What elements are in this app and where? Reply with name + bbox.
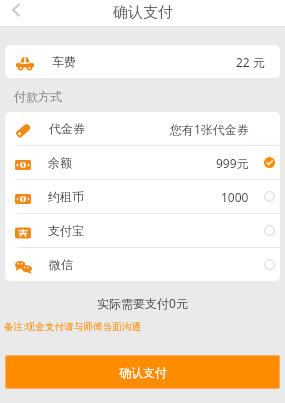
button[interactable]: 约租币 (5, 180, 280, 213)
staticText: 22 元 (236, 54, 265, 70)
staticText: 代金券 (49, 121, 85, 136)
staticText: 确认支付 (113, 3, 173, 22)
staticText: 您有1张代金券 (170, 121, 249, 137)
staticText: 确认支付 (119, 365, 167, 380)
staticText: 车费 (52, 54, 76, 69)
button[interactable]: 支付宝 (5, 214, 280, 247)
staticText: 余额 (48, 155, 72, 170)
staticText: 支付宝 (48, 223, 84, 238)
button[interactable]: Back (0, 0, 32, 20)
staticText: 备注:现金支付请与师傅当面沟通 (4, 320, 141, 333)
staticText: 约租币 (48, 189, 84, 204)
staticText: 实际需要支付0元 (0, 295, 285, 311)
staticText: 微信 (49, 257, 73, 272)
staticText: 999元 (216, 155, 249, 171)
button[interactable]: 车费 (5, 45, 280, 78)
button[interactable]: 确认支付 (5, 355, 280, 389)
button[interactable]: 代金券 (5, 112, 280, 145)
button[interactable]: 微信 (5, 248, 280, 281)
staticText: 1000 (221, 189, 249, 205)
staticText: 付款方式 (14, 89, 62, 104)
button[interactable]: 余额 (5, 146, 280, 179)
